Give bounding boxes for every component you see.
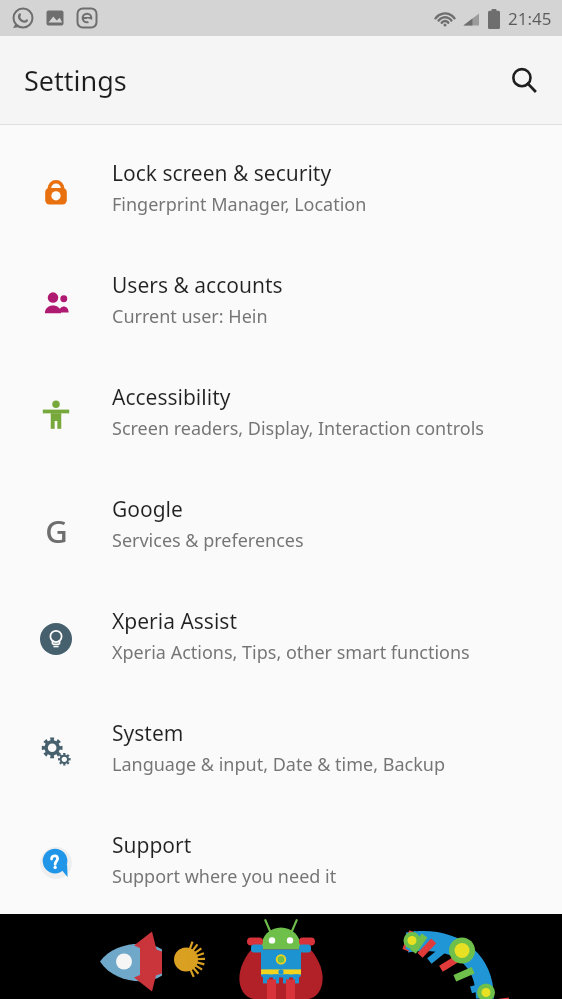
button[interactable]: G (0, 489, 562, 601)
button[interactable]: Xperia Assist (0, 601, 562, 713)
button[interactable]: System (0, 713, 562, 825)
staticText: System (112, 719, 184, 748)
staticText: Google (112, 495, 183, 524)
staticText: Screen readers, Display, Interaction con… (112, 416, 484, 441)
staticText: Accessibility (112, 383, 231, 412)
staticText: Xperia Actions, Tips, other smart functi… (112, 640, 470, 665)
staticText: Services & preferences (112, 528, 304, 553)
staticText: Current user: Hein (112, 304, 268, 329)
button[interactable]: Search (500, 56, 548, 104)
staticText: Support (112, 831, 192, 860)
staticText: G (45, 510, 68, 544)
staticText: Users & accounts (112, 271, 283, 300)
staticText: Language & input, Date & time, Backup (112, 752, 445, 777)
staticText: Support where you need it (112, 864, 337, 889)
button[interactable]: Users & accounts (0, 265, 562, 377)
staticText: Settings (24, 62, 127, 99)
staticText: Xperia Assist (112, 607, 237, 636)
button[interactable]: Accessibility (0, 377, 562, 489)
staticText: 21:45 (508, 7, 552, 30)
staticText: Fingerprint Manager, Location (112, 192, 367, 217)
staticText: Lock screen & security (112, 159, 332, 188)
button[interactable]: Support (0, 825, 562, 914)
button[interactable]: Lock screen & security (0, 125, 562, 265)
